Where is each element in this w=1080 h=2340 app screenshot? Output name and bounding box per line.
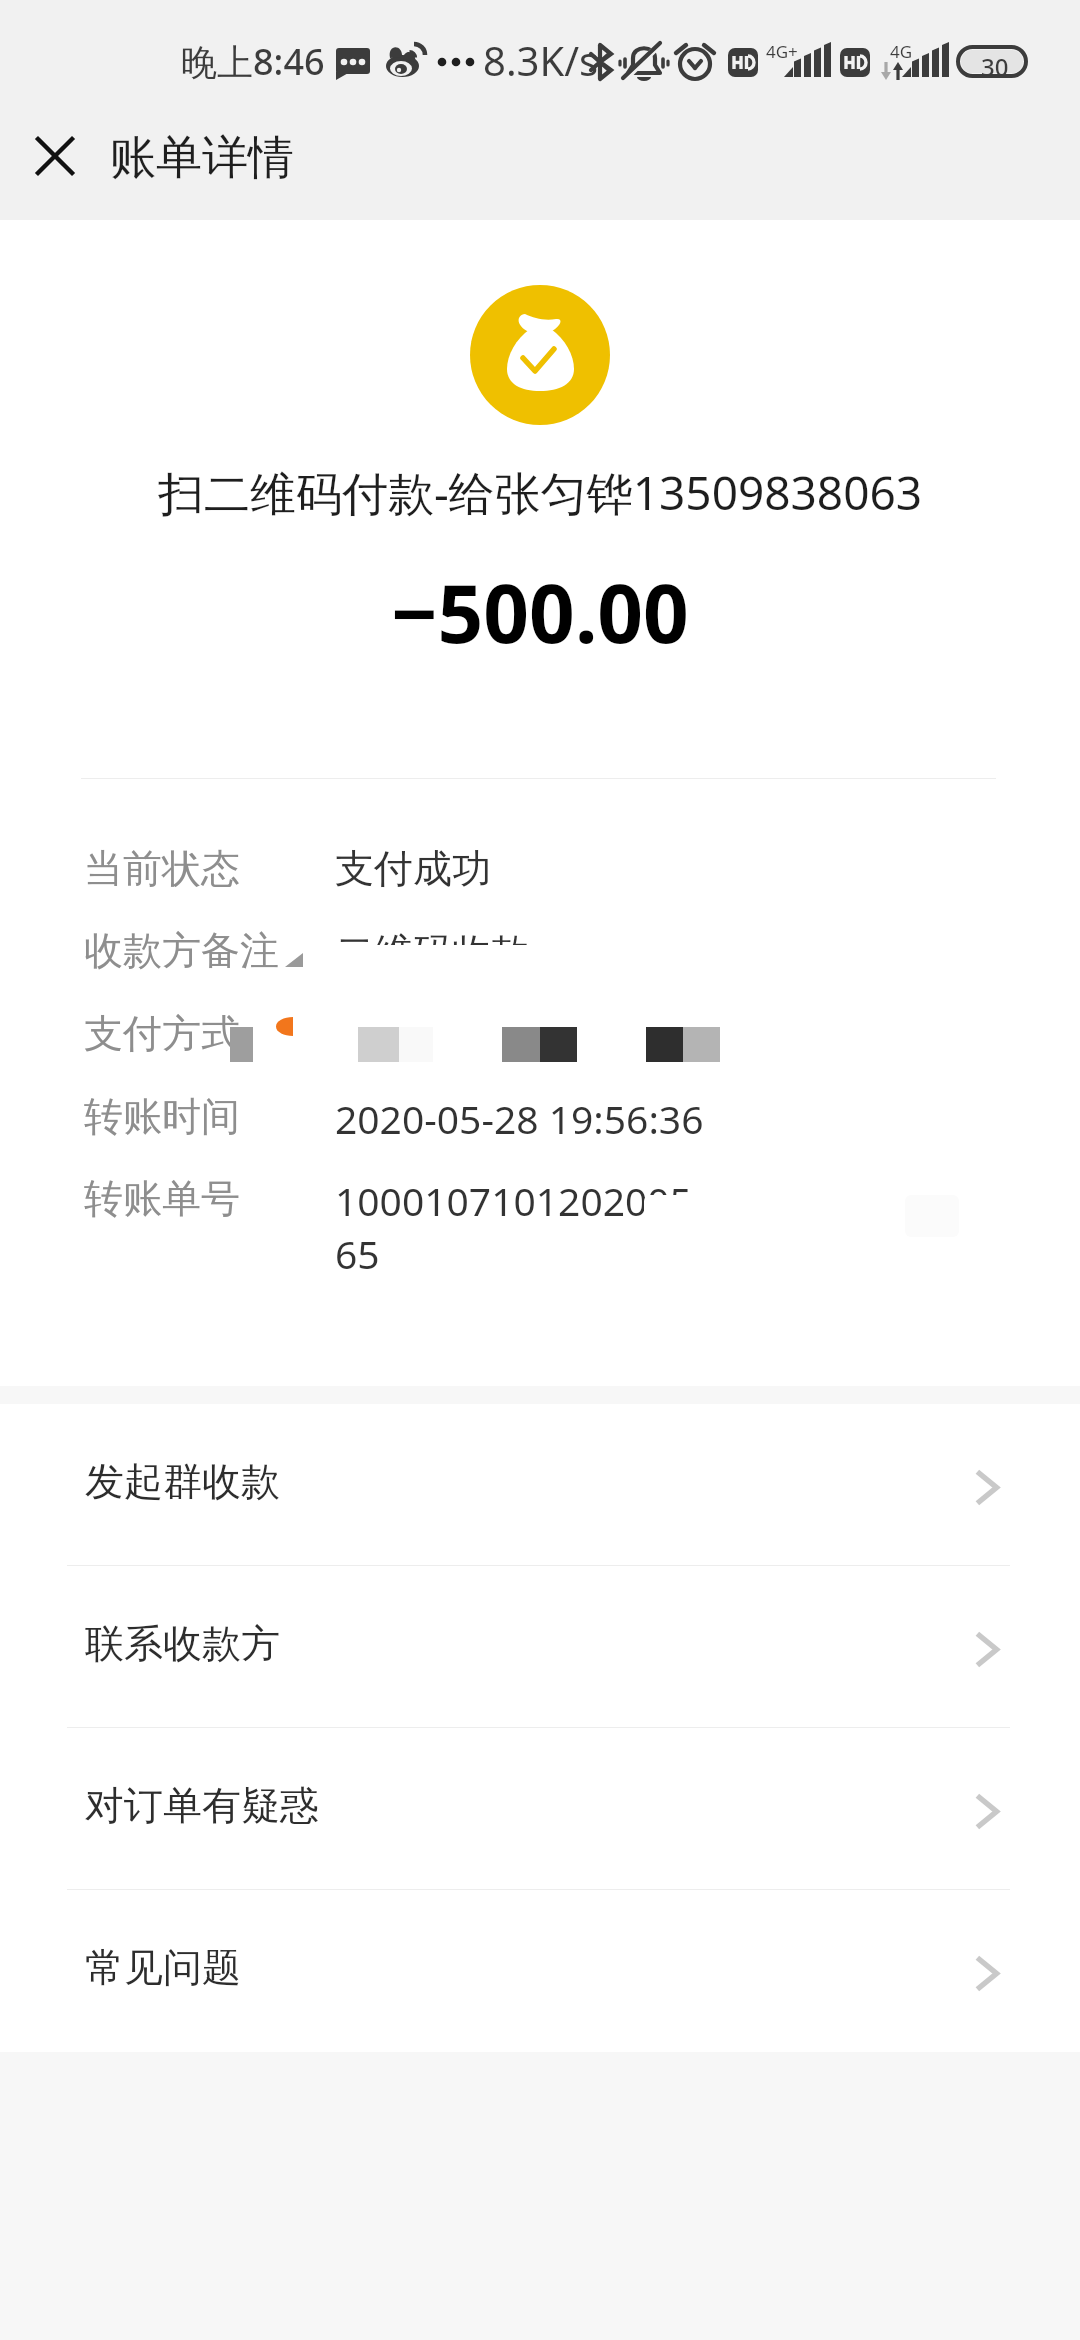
staticText: 2020-05-28 19:56:36	[335, 1092, 704, 1145]
staticText: 4G+	[766, 40, 798, 63]
staticText: 转账时间	[84, 1092, 240, 1141]
staticText: −500.00	[0, 557, 1080, 666]
staticText: 对订单有疑惑	[85, 1781, 319, 1830]
button[interactable]: 常见问题	[0, 1890, 1080, 2052]
button[interactable]: 联系收款方	[0, 1566, 1080, 1728]
staticText: 65	[335, 1227, 380, 1280]
staticText: 1000107101202005	[335, 1174, 692, 1227]
staticText: 8.3K/s	[483, 33, 599, 87]
staticText: 30	[981, 50, 1009, 83]
staticText: 支付成功	[335, 844, 491, 893]
staticText: 常见问题	[85, 1943, 241, 1992]
staticText: 二维码收款	[335, 928, 530, 977]
staticText: 支付方式	[84, 1009, 240, 1058]
staticText: 扫二维码付款-给张匀铧13509838063	[0, 461, 1080, 524]
staticText: 账单详情	[110, 129, 294, 187]
staticText: 联系收款方	[85, 1619, 280, 1668]
staticText: 发起群收款	[85, 1457, 280, 1506]
staticText: 4G	[890, 40, 913, 63]
staticText: 晚上8:46	[181, 37, 325, 86]
staticText: 当前状态	[84, 844, 240, 893]
button[interactable]: 对订单有疑惑	[0, 1728, 1080, 1890]
button[interactable]: Close	[17, 118, 93, 194]
button[interactable]: 发起群收款	[0, 1404, 1080, 1566]
staticText: 收款方备注	[84, 926, 279, 975]
staticText: 转账单号	[84, 1174, 240, 1223]
